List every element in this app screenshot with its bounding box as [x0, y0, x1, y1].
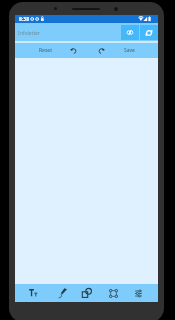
- button[interactable]: Save: [116, 43, 142, 58]
- staticText: 8:38: [19, 16, 29, 23]
- button[interactable]: Text format: [24, 284, 41, 302]
- staticText: Save: [124, 47, 135, 54]
- button[interactable]: Shapes: [78, 284, 95, 302]
- button[interactable]: Infoletter: [15, 23, 121, 41]
- button[interactable]: Unlink: [121, 25, 139, 40]
- button[interactable]: Refresh: [140, 25, 158, 40]
- staticText: Reset: [39, 47, 52, 54]
- button[interactable]: Transform: [105, 284, 122, 302]
- button[interactable]: Redo: [91, 43, 111, 58]
- button[interactable]: Undo: [63, 43, 83, 58]
- button[interactable]: Settings: [130, 284, 147, 302]
- staticText: Infoletter: [18, 30, 41, 37]
- button[interactable]: Draw: [53, 284, 70, 302]
- button[interactable]: Reset: [32, 43, 58, 58]
